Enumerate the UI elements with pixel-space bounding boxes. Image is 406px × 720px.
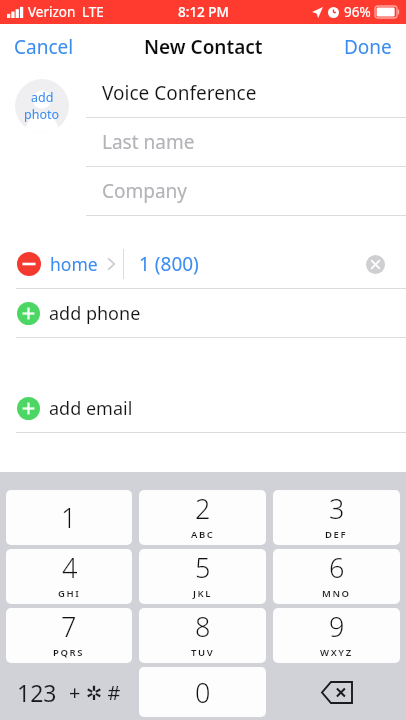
staticText: add email — [49, 396, 133, 421]
staticText: 7 — [61, 608, 77, 645]
staticText: WXYZ — [320, 646, 353, 659]
staticText: photo — [24, 106, 60, 123]
staticText: add — [31, 89, 54, 106]
staticText: ABC — [191, 528, 215, 541]
staticText: Verizon — [28, 3, 76, 21]
staticText: 8 — [195, 608, 211, 645]
staticText: 123 — [17, 677, 57, 708]
staticText: home — [50, 252, 98, 276]
button[interactable]: Delete — [273, 667, 400, 717]
staticText: Last name — [102, 129, 195, 155]
button[interactable]: 123 — [6, 667, 132, 717]
button[interactable]: add phone — [0, 289, 406, 337]
button[interactable]: Cancel — [0, 26, 88, 68]
staticText: PQRS — [53, 646, 85, 659]
button[interactable]: 6 — [273, 549, 400, 604]
button[interactable]: 9 — [273, 608, 400, 663]
staticText: 4 — [62, 549, 78, 586]
staticText: 2 — [195, 490, 211, 527]
button[interactable]: Voice Conference — [86, 69, 406, 117]
button[interactable]: 7 — [6, 608, 132, 663]
button[interactable]: home — [0, 240, 406, 288]
button[interactable]: Clear text — [359, 248, 391, 280]
button[interactable]: Add photo — [15, 79, 69, 133]
button[interactable]: 2 — [139, 490, 266, 545]
staticText: 9 — [329, 608, 345, 645]
button[interactable]: 5 — [139, 549, 266, 604]
staticText: New Contact — [144, 34, 263, 60]
button[interactable]: Last name — [86, 118, 406, 166]
staticText: GHI — [58, 587, 81, 600]
staticText: Cancel — [14, 34, 74, 60]
staticText: 0 — [195, 674, 211, 711]
staticText: 5 — [195, 549, 211, 586]
staticText: + ✲ # — [69, 679, 121, 706]
staticText: 3 — [329, 490, 345, 527]
staticText: 6 — [329, 549, 345, 586]
staticText: 96% — [344, 3, 371, 21]
staticText: 1 (800) — [139, 251, 199, 277]
staticText: Voice Conference — [102, 80, 257, 106]
button[interactable]: 1 — [6, 490, 132, 545]
button[interactable]: 3 — [273, 490, 400, 545]
staticText: 1 — [61, 499, 77, 536]
staticText: MNO — [322, 587, 351, 600]
button[interactable]: add email — [0, 384, 406, 432]
button[interactable]: 0 — [139, 667, 266, 717]
button[interactable]: 4 — [6, 549, 132, 604]
staticText: add phone — [49, 301, 141, 326]
staticText: TUV — [191, 646, 215, 659]
staticText: Company — [102, 178, 188, 204]
staticText: Done — [344, 34, 392, 60]
button[interactable]: Company — [86, 167, 406, 215]
staticText: LTE — [82, 3, 104, 21]
staticText: JKL — [193, 587, 213, 600]
staticText: DEF — [325, 528, 348, 541]
button[interactable]: 8 — [139, 608, 266, 663]
staticText: 8:12 PM — [178, 3, 229, 21]
button[interactable]: Done — [330, 26, 406, 68]
